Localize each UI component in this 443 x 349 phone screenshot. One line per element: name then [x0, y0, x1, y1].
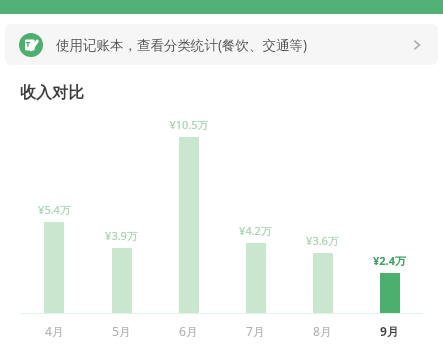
staticText: 5月 — [112, 323, 131, 339]
staticText: ¥4.2万 — [239, 223, 272, 238]
button[interactable]: 记账本 — [5, 24, 438, 65]
staticText: ¥5.4万 — [38, 202, 71, 217]
staticText: 使用记账本，查看分类统计(餐饮、交通等) — [56, 36, 308, 54]
staticText: 8月 — [313, 323, 332, 339]
staticText: 4月 — [45, 323, 64, 339]
staticText: 6月 — [179, 323, 198, 339]
other: 记账本 — [19, 33, 43, 57]
staticText: ¥2.4万 — [373, 253, 406, 268]
staticText: 9月 — [380, 323, 399, 339]
other: 查看详情 — [410, 38, 424, 52]
staticText: ¥3.6万 — [306, 233, 339, 248]
staticText: 7月 — [246, 323, 265, 339]
staticText: ¥10.5万 — [169, 117, 209, 132]
staticText: ¥3.9万 — [105, 228, 138, 243]
staticText: 收入对比 — [20, 83, 84, 103]
